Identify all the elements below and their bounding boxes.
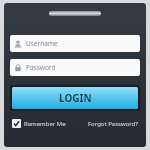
button[interactable]: Password	[10, 59, 140, 76]
button[interactable]: Username	[10, 35, 140, 52]
button[interactable]: LOGIN	[12, 87, 138, 109]
staticText: Forgot Password?	[88, 120, 138, 128]
staticText: Username	[26, 39, 58, 48]
staticText: Password	[26, 63, 56, 72]
staticText: Remember Me	[24, 120, 66, 128]
staticText: LOGIN	[59, 91, 92, 105]
other: Username	[14, 40, 22, 48]
button[interactable]: Remember Me	[12, 119, 66, 128]
button[interactable]: Forgot Password?	[88, 120, 138, 128]
other: Password	[14, 64, 22, 72]
